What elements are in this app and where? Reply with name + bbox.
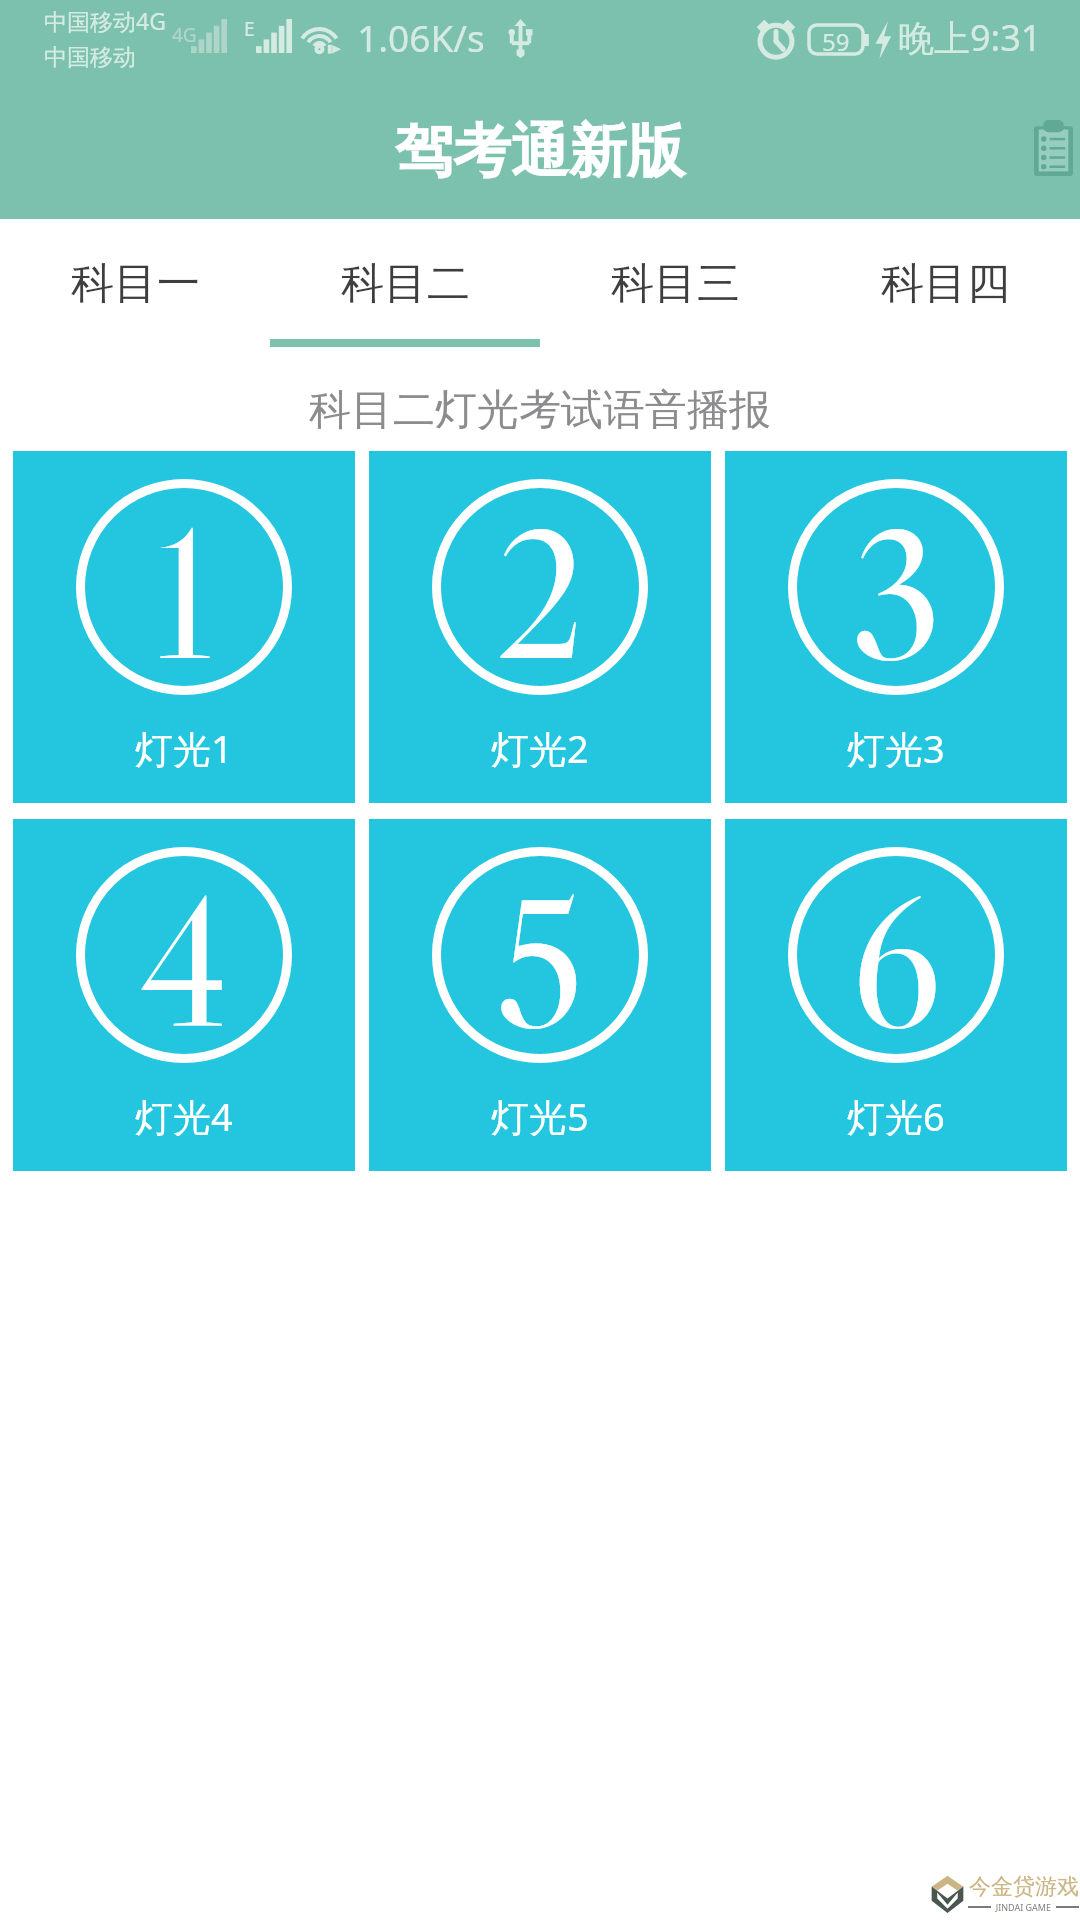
staticText: 灯光3 [847, 722, 945, 774]
staticText: 6 [850, 850, 943, 1074]
staticText: 灯光4 [135, 1090, 233, 1142]
button[interactable]: 科目二 [270, 219, 540, 354]
staticText: 中国移动 [44, 43, 136, 72]
staticText: 科目二灯光考试语音播报 [0, 384, 1080, 437]
button[interactable]: 4 [13, 819, 355, 1171]
staticText: JINDAI GAME [991, 1901, 1056, 1913]
button[interactable]: 题库 [1023, 118, 1080, 178]
staticText: E [244, 16, 255, 42]
button[interactable]: 科目一 [0, 219, 270, 354]
staticText: 2 [494, 482, 587, 706]
staticText: 驾考通新版 [395, 115, 685, 188]
staticText: 灯光1 [135, 722, 233, 774]
staticText: 科目二 [341, 257, 470, 311]
button[interactable]: 3 [725, 451, 1067, 803]
staticText: 4 [138, 850, 231, 1074]
button[interactable]: 1 [13, 451, 355, 803]
button[interactable]: 6 [725, 819, 1067, 1171]
staticText: 59 [822, 25, 850, 54]
staticText: 晚上9:31 [898, 13, 1042, 62]
staticText: 5 [495, 850, 586, 1074]
staticText: 灯光6 [847, 1090, 945, 1142]
staticText: 3 [849, 482, 943, 706]
staticText: 灯光2 [491, 722, 589, 774]
button[interactable]: 5 [369, 819, 711, 1171]
staticText: 4G [172, 22, 197, 48]
staticText: 中国移动4G [44, 5, 166, 36]
button[interactable]: 科目四 [810, 219, 1080, 354]
staticText: 灯光5 [491, 1090, 589, 1142]
staticText: 科目三 [611, 257, 740, 311]
button[interactable]: 科目三 [540, 219, 810, 354]
staticText: 科目四 [881, 257, 1010, 311]
staticText: 今金贷游戏 [969, 1873, 1079, 1901]
button[interactable]: 2 [369, 451, 711, 803]
staticText: 1 [153, 482, 216, 706]
staticText: 1.06K/s [357, 12, 485, 62]
staticText: 科目一 [71, 257, 200, 311]
